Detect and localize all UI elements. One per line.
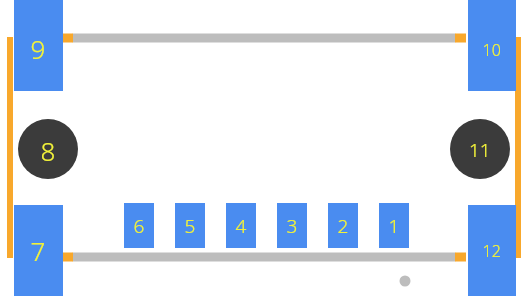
button[interactable]: PCB footprint diagram with numbered pads: [0, 0, 528, 296]
